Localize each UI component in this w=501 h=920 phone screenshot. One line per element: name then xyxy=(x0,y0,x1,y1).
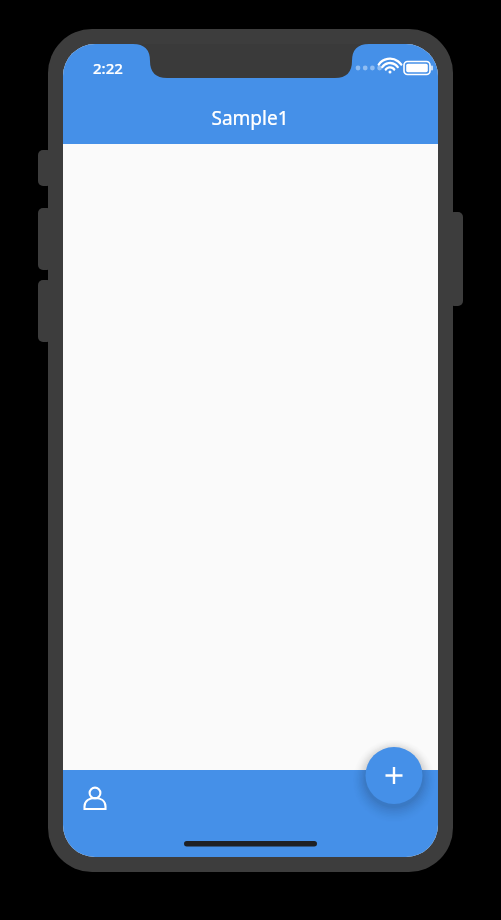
button[interactable]: Add xyxy=(365,747,423,805)
button[interactable]: Account xyxy=(71,776,119,824)
